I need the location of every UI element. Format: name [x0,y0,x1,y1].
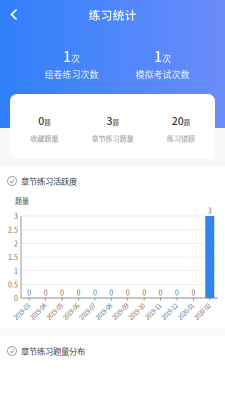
staticText: 0 [76,287,80,297]
staticText: 3 [208,205,212,215]
staticText: 0 [158,287,162,297]
button[interactable]: Back [1,1,27,27]
staticText: 章节练习题量 [91,133,133,143]
staticText: 0 [93,287,97,297]
staticText: 练习错题 [167,133,195,143]
staticText: 2019-11 [140,300,160,309]
staticText: 章节练习题量分布 [21,345,85,357]
staticText: 2019-08 [91,300,111,309]
staticText: 3 [14,211,18,221]
staticText: 题 [184,118,190,127]
staticText: 3 [106,113,112,128]
staticText: 2019-06 [58,300,78,309]
staticText: 2 [14,238,18,248]
staticText: 2020-02 [189,300,209,309]
staticText: 0 [38,113,44,128]
staticText: 2019-03 [9,300,29,309]
staticText: 次 [162,52,171,64]
staticText: 0.5 [8,279,18,289]
staticText: 章节练习活跃度 [21,175,77,187]
staticText: 2019-10 [124,300,144,309]
staticText: 题 [44,118,50,127]
staticText: 1 [154,46,162,66]
staticText: 2019-12 [156,300,176,309]
staticText: 题量 [15,195,29,205]
staticText: 2019-07 [74,300,94,309]
staticText: 次 [71,52,80,64]
staticText: 2020-01 [173,300,193,309]
staticText: 组卷练习次数 [44,68,98,80]
staticText: 收藏题量 [30,133,58,143]
staticText: 20 [172,113,184,128]
staticText: 0 [191,287,195,297]
staticText: 0 [126,287,130,297]
staticText: 0 [109,287,113,297]
staticText: 0 [60,287,64,297]
staticText: 1.5 [8,252,18,262]
staticText: 模拟考试次数 [135,68,189,80]
staticText: 0 [27,287,31,297]
staticText: 2019-05 [41,300,61,309]
staticText: 1 [14,266,18,276]
staticText: 0 [44,287,48,297]
staticText: 0 [142,287,146,297]
staticText: 1 [63,46,71,66]
staticText: 2.5 [8,225,18,235]
staticText: 0 [175,287,179,297]
staticText: 2019-09 [107,300,127,309]
staticText: 2019-04 [25,300,45,309]
staticText: 0 [14,293,18,303]
staticText: 题 [112,118,118,127]
staticText: 练习统计 [88,6,136,23]
